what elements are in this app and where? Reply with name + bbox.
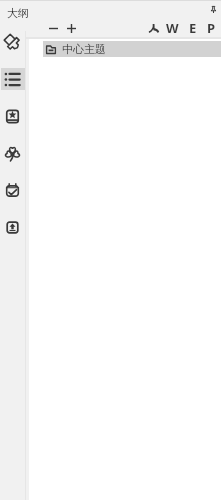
button[interactable]: Expand all <box>63 18 80 38</box>
staticText: E <box>189 19 197 37</box>
button[interactable]: E <box>184 17 201 39</box>
button[interactable]: Outline list <box>1 68 25 90</box>
button[interactable]: 中心主题 <box>43 41 221 57</box>
button[interactable]: Tasks <box>1 179 25 201</box>
button[interactable]: Export <box>1 216 25 238</box>
button[interactable]: Pin panel <box>205 1 221 17</box>
button[interactable]: Export to PDF <box>145 18 162 38</box>
staticText: W <box>166 19 179 37</box>
button[interactable]: Favorites <box>1 105 25 127</box>
button[interactable]: W <box>164 17 181 39</box>
button[interactable]: P <box>203 17 220 39</box>
button[interactable]: Themes <box>1 142 25 164</box>
staticText: 中心主题 <box>62 42 106 56</box>
staticText: P <box>207 19 216 37</box>
button[interactable]: Collapse all <box>45 18 62 38</box>
staticText: 大纲 <box>7 6 29 20</box>
button[interactable]: Format brush <box>1 31 25 53</box>
